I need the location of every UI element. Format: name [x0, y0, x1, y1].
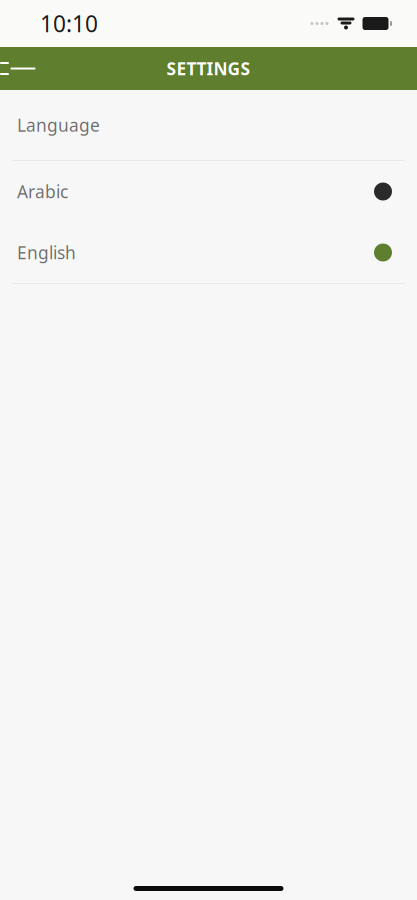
staticText: English	[17, 241, 76, 264]
button[interactable]: Back	[0, 47, 46, 90]
staticText: SETTINGS	[166, 57, 250, 80]
button[interactable]: Language	[0, 90, 417, 160]
button[interactable]: English	[0, 222, 417, 283]
button[interactable]: Arabic	[0, 161, 417, 222]
staticText: 10:10	[40, 8, 98, 38]
staticText: Arabic	[17, 180, 68, 203]
staticText: Language	[17, 113, 100, 136]
